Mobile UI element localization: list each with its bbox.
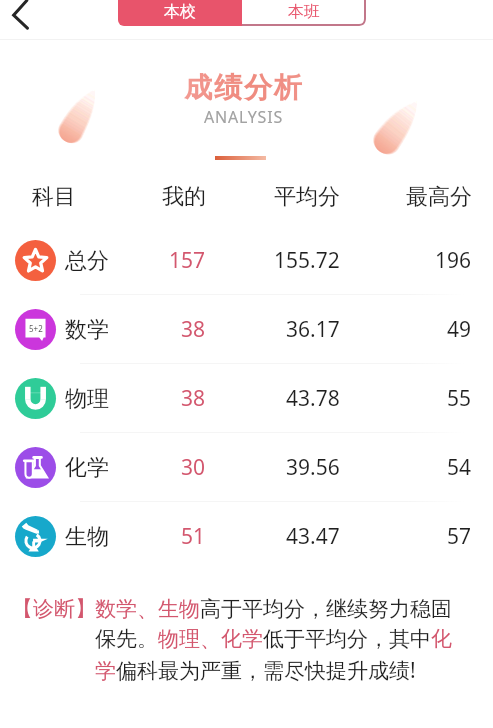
staticText: 化学: [65, 454, 109, 482]
staticText: 本校: [164, 2, 196, 22]
staticText: 最高分: [406, 183, 472, 211]
button[interactable]: 化学: [0, 433, 493, 502]
staticText: 5+2: [29, 323, 43, 334]
staticText: 39.56: [286, 453, 340, 482]
button[interactable]: 本班: [242, 0, 366, 26]
staticText: 生物: [65, 523, 109, 551]
staticText: 数学: [65, 316, 109, 344]
staticText: 38: [181, 315, 206, 344]
staticText: 51: [181, 522, 206, 551]
staticText: 总分: [65, 247, 109, 275]
button[interactable]: 总分: [0, 226, 493, 295]
staticText: 科目: [32, 183, 76, 211]
staticText: 157: [169, 246, 206, 275]
staticText: 【诊断】: [12, 596, 96, 622]
staticText: 54: [447, 453, 472, 482]
button[interactable]: Back: [0, 0, 40, 40]
button[interactable]: 5+2: [0, 295, 493, 364]
staticText: 物理: [65, 385, 109, 413]
staticText: 57: [447, 522, 472, 551]
staticText: 155.72: [274, 246, 340, 275]
staticText: 我的: [162, 183, 206, 211]
button[interactable]: 本校: [118, 0, 242, 26]
staticText: 数学、生物高于平均分，继续努力稳固保先。物理、化学低于平均分，其中化学偏科最为严…: [95, 596, 455, 684]
staticText: 本班: [288, 2, 320, 22]
staticText: 成绩分析: [183, 70, 303, 105]
staticText: 196: [435, 246, 472, 275]
staticText: 38: [181, 384, 206, 413]
button[interactable]: 生物: [0, 502, 493, 571]
button[interactable]: 物理: [0, 364, 493, 433]
staticText: 55: [447, 384, 472, 413]
staticText: 43.78: [286, 384, 340, 413]
staticText: 43.47: [286, 522, 340, 551]
staticText: ANALYSIS: [204, 106, 283, 128]
staticText: 36.17: [286, 315, 340, 344]
staticText: 30: [181, 453, 206, 482]
staticText: 平均分: [274, 183, 340, 211]
staticText: 49: [447, 315, 472, 344]
